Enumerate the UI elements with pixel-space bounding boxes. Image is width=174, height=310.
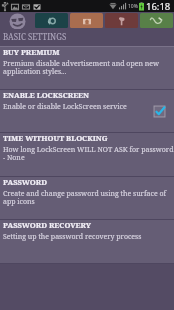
- button[interactable]: Home settings: [70, 13, 103, 28]
- button[interactable]: ENABLE LOCKSCREEN: [0, 90, 174, 133]
- button[interactable]: PASSWORD RECOVERY: [0, 220, 174, 264]
- staticText: BASIC SETTINGS: [3, 31, 67, 42]
- button[interactable]: Application icon: [0, 12, 34, 29]
- staticText: TIME WITHOUT BLOCKING: [3, 133, 108, 143]
- staticText: Setting up the password recovery process: [3, 232, 142, 242]
- button[interactable]: Enable LockScreen: [154, 106, 165, 117]
- staticText: 10%: [128, 3, 138, 10]
- staticText: Premium disable advertisement and open n…: [3, 59, 160, 76]
- button[interactable]: Lock screen settings: [35, 13, 68, 28]
- button[interactable]: BUY PREMIUM: [0, 47, 174, 90]
- staticText: BUY PREMIUM: [3, 47, 60, 57]
- staticText: How long LockScreen WILL NOT ASK for pas…: [3, 145, 174, 162]
- button[interactable]: Gesture settings: [140, 13, 173, 28]
- staticText: 16:18: [146, 0, 171, 12]
- button[interactable]: PASSWORD: [0, 177, 174, 220]
- staticText: Enable or disable LockScreen service: [3, 102, 127, 112]
- staticText: PASSWORD: [3, 177, 47, 187]
- button[interactable]: TIME WITHOUT BLOCKING: [0, 133, 174, 177]
- staticText: ENABLE LOCKSCREEN: [3, 90, 90, 100]
- staticText: PASSWORD RECOVERY: [3, 220, 91, 230]
- staticText: Create and change password using the sur…: [3, 189, 167, 206]
- button[interactable]: Touch settings: [105, 13, 138, 28]
